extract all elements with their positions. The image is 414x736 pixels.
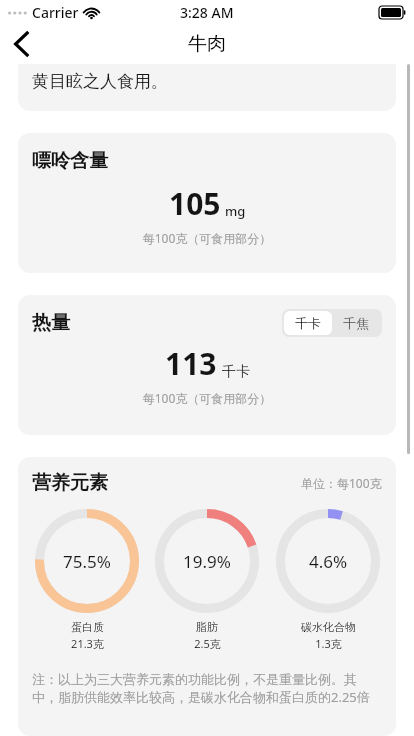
button[interactable]: 千卡 [284,311,332,335]
staticText: 每100克（可食用部分） [18,390,396,406]
button[interactable]: Back [0,24,44,64]
button[interactable]: 千焦 [332,311,380,335]
staticText: 脂肪 [196,620,218,634]
staticText: Carrier [32,3,79,22]
staticText: 千卡 [222,363,250,381]
staticText: 单位：每100克 [301,475,382,491]
staticText: 蛋白质 [71,620,104,634]
staticText: 21.3克 [71,636,104,651]
staticText: 营养元素 [32,471,108,495]
staticText: 千卡 [295,315,321,331]
staticText: 碳水化合物 [301,620,356,634]
staticText: 1.3克 [315,636,342,651]
staticText: 2.5克 [194,636,221,651]
staticText: 75.5% [63,550,111,573]
staticText: 热量 [32,311,70,335]
staticText: 黄目眩之人食用。 [32,71,168,92]
staticText: 嘌呤含量 [32,149,108,173]
staticText: 4.6% [309,550,348,573]
staticText: 千焦 [343,315,369,331]
staticText: 3:28 AM [180,3,234,22]
staticText: 113 [165,343,217,384]
staticText: mg [225,202,246,220]
staticText: 牛肉 [188,32,226,56]
staticText: 19.9% [183,550,231,573]
staticText: 每100克（可食用部分） [18,230,396,246]
staticText: 105 [169,183,221,224]
staticText: 注：以上为三大营养元素的功能比例，不是重量比例。其中，脂肪供能效率比较高，是碳水… [32,671,382,706]
